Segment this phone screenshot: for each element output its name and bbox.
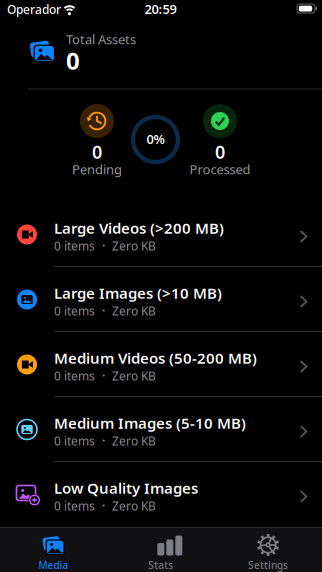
staticText: 0 items [54,303,95,319]
button[interactable]: Medium Videos (50-200 MB) [0,332,322,397]
staticText: · [102,238,105,254]
staticText: 0% [146,130,164,148]
staticText: Medium Videos (50-200 MB) [54,348,257,368]
staticText: Large Videos (>200 MB) [54,218,224,238]
staticText: 20:59 [144,0,176,17]
staticText: Zero KB [112,368,156,384]
staticText: 0 items [54,368,95,384]
staticText: 0 [92,140,102,164]
staticText: Low Quality Images [54,478,198,498]
staticText: 0 items [54,433,95,449]
staticText: · [102,303,105,319]
button[interactable]: Large Videos (>200 MB) [0,202,322,267]
staticText: Stats [148,558,173,572]
staticText: Zero KB [112,303,156,319]
button[interactable]: Medium Images (5-10 MB) [0,397,322,462]
staticText: Media [38,558,68,572]
staticText: Zero KB [112,238,156,254]
staticText: · [102,498,105,514]
staticText: Pending [72,160,122,178]
staticText: · [102,368,105,384]
button[interactable]: Settings [215,527,322,572]
button[interactable]: Large Images (>10 MB) [0,267,322,332]
staticText: Settings [248,558,288,572]
staticText: Operador [7,1,61,17]
button[interactable]: Media [0,527,107,572]
staticText: 0 [215,140,225,164]
staticText: Medium Images (5-10 MB) [54,413,246,433]
staticText: Zero KB [112,498,156,514]
staticText: Total Assets [66,30,136,48]
staticText: · [102,433,105,449]
staticText: Zero KB [112,433,156,449]
staticText: Processed [189,160,250,178]
staticText: 0 items [54,498,95,514]
staticText: 0 [66,44,80,76]
button[interactable]: Low Quality Images [0,462,322,527]
staticText: Large Images (>10 MB) [54,283,222,303]
staticText: 0 items [54,238,95,254]
button[interactable]: Stats [107,527,215,572]
